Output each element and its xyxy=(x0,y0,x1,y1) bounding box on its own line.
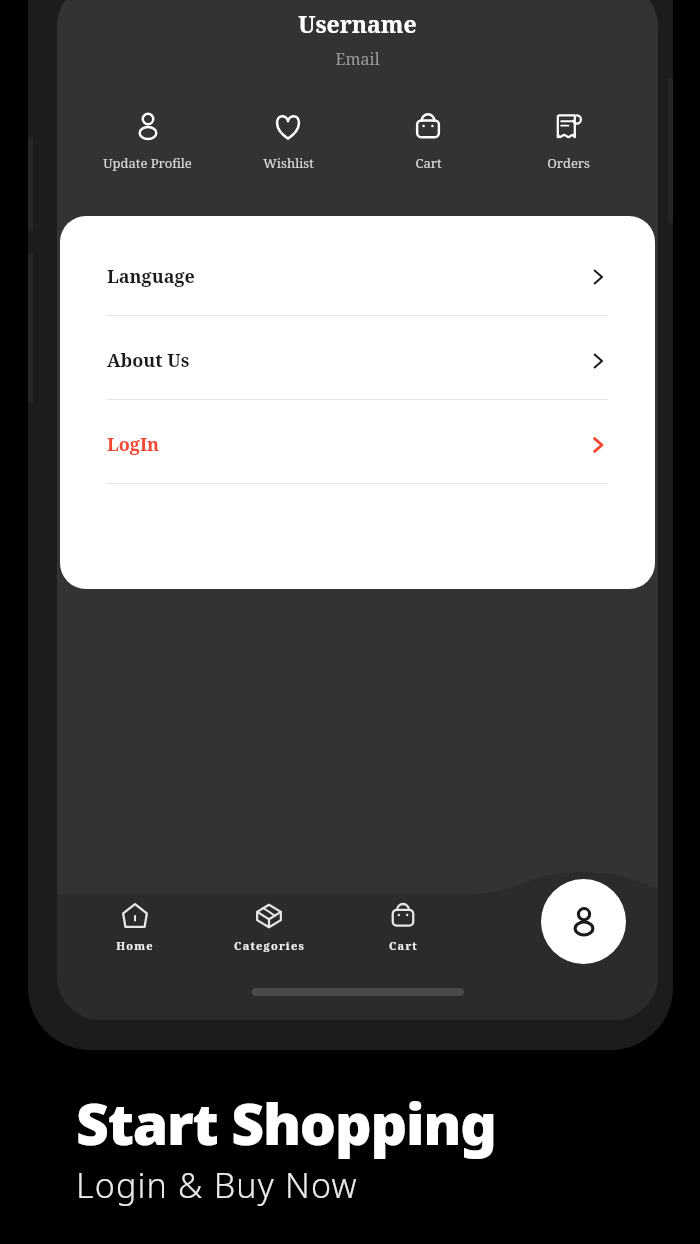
staticText: Categories xyxy=(234,938,305,953)
button[interactable]: Update Profile xyxy=(77,106,218,176)
staticText: Cart xyxy=(389,938,418,953)
button[interactable]: LogIn xyxy=(60,428,655,461)
staticText: LogIn xyxy=(107,432,160,457)
staticText: Language xyxy=(107,264,195,289)
staticText: Email xyxy=(57,48,658,70)
button[interactable]: Home xyxy=(67,898,202,955)
button[interactable]: Categories xyxy=(202,898,336,955)
button[interactable]: Cart xyxy=(336,898,470,955)
button[interactable]: About Us xyxy=(60,344,655,377)
button[interactable]: Wishlist xyxy=(218,106,358,176)
staticText: Home xyxy=(116,938,154,953)
staticText: Cart xyxy=(415,154,442,172)
staticText: Login & Buy Now xyxy=(76,1162,358,1208)
staticText: Orders xyxy=(547,154,590,172)
staticText: Update Profile xyxy=(103,154,192,172)
staticText: Start Shopping xyxy=(76,1084,496,1162)
button[interactable]: Cart xyxy=(358,106,498,176)
button[interactable]: Orders xyxy=(498,106,638,176)
staticText: About Us xyxy=(107,348,190,373)
button[interactable]: Language xyxy=(60,260,655,293)
button[interactable]: Profile xyxy=(541,879,626,964)
staticText: Wishlist xyxy=(263,154,314,172)
staticText: Username xyxy=(57,8,658,39)
